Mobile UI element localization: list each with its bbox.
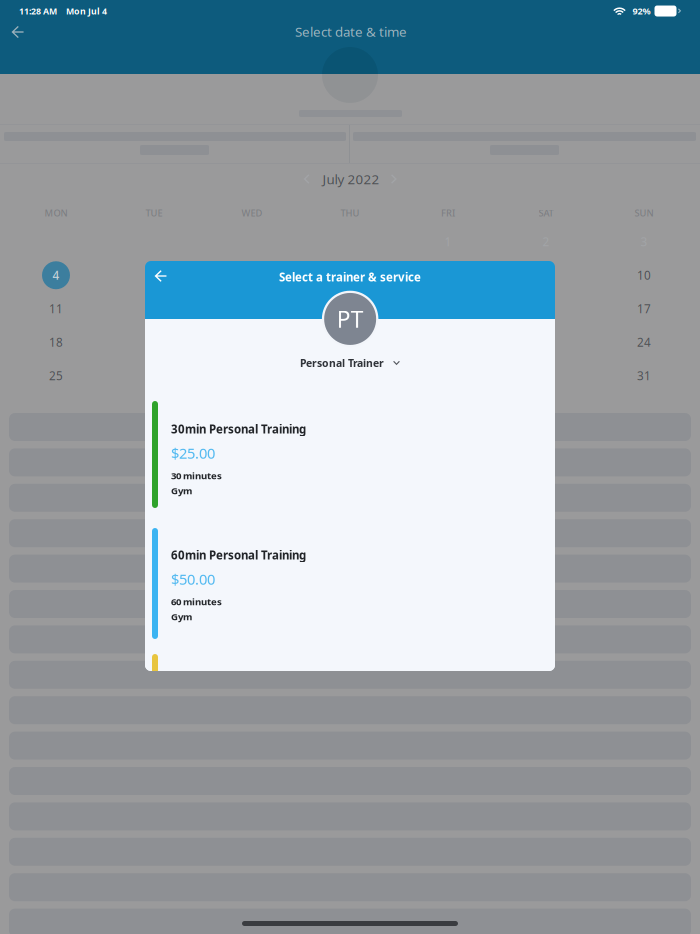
staticText: SAT: [538, 207, 553, 219]
staticText: 4: [52, 267, 59, 283]
staticText: MON: [44, 207, 67, 219]
staticText: $50.00: [171, 569, 215, 589]
staticText: WED: [241, 207, 262, 219]
staticText: 21: [343, 334, 357, 350]
staticText: 14: [343, 301, 357, 317]
button[interactable]: Personal Trainer: [145, 353, 555, 373]
staticText: $25.00: [171, 443, 215, 463]
staticText: 31: [637, 368, 651, 384]
staticText: 10: [637, 267, 651, 283]
staticText: 30 minutes: [171, 469, 222, 482]
staticText: 3: [640, 234, 647, 250]
staticText: TUE: [145, 207, 162, 219]
staticText: THU: [340, 207, 359, 219]
staticText: Gym: [171, 610, 192, 623]
staticText: 7: [346, 267, 353, 283]
staticText: SUN: [634, 207, 653, 219]
button[interactable]: 60min Personal Training: [145, 518, 555, 644]
staticText: 24: [637, 334, 651, 350]
staticText: Select a trainer & service: [279, 269, 421, 285]
staticText: 11: [49, 301, 63, 317]
staticText: July 2022: [322, 170, 379, 188]
staticText: 2: [542, 234, 549, 250]
button[interactable]: Back: [2, 20, 34, 44]
staticText: PT: [337, 303, 364, 334]
staticText: 92%: [632, 5, 650, 17]
staticText: Select date & time: [295, 22, 407, 41]
staticText: 11:28 AM: [19, 5, 57, 17]
staticText: 18: [49, 334, 63, 350]
staticText: FRI: [441, 207, 455, 219]
staticText: 60 minutes: [171, 595, 222, 608]
button[interactable]: 30min Personal Training: [145, 392, 555, 518]
staticText: Gym: [171, 484, 192, 497]
staticText: 17: [637, 301, 651, 317]
staticText: 25: [49, 368, 63, 384]
staticText: Personal Trainer: [300, 356, 384, 370]
button[interactable]: Back: [145, 261, 177, 291]
staticText: Mon Jul 4: [66, 5, 107, 17]
staticText: 30min Personal Training: [171, 421, 306, 437]
staticText: 60min Personal Training: [171, 547, 306, 563]
staticText: 5: [150, 267, 157, 283]
